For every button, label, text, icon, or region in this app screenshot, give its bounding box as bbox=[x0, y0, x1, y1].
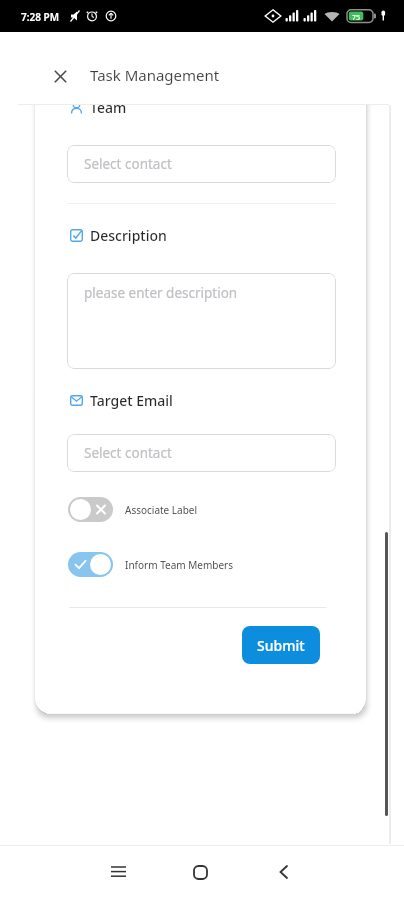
button[interactable]: Inform Team Members bbox=[68, 552, 233, 577]
staticText: Description bbox=[90, 226, 167, 244]
staticText: Team bbox=[90, 98, 127, 116]
button[interactable]: Submit bbox=[242, 626, 320, 664]
button[interactable] bbox=[103, 857, 133, 887]
button[interactable]: Select contact bbox=[67, 434, 336, 472]
button[interactable] bbox=[268, 857, 298, 887]
button[interactable] bbox=[185, 857, 215, 887]
staticText: Associate Label bbox=[125, 503, 198, 517]
staticText: 75 bbox=[352, 13, 361, 23]
button[interactable]: Associate Label bbox=[68, 497, 198, 522]
staticText: Submit bbox=[257, 636, 305, 655]
staticText: Inform Team Members bbox=[125, 558, 233, 572]
button[interactable]: please enter description bbox=[67, 273, 336, 369]
staticText: please enter description bbox=[84, 284, 238, 302]
button[interactable] bbox=[46, 62, 74, 90]
staticText: Select contact bbox=[84, 155, 172, 173]
button[interactable]: Select contact bbox=[67, 145, 336, 183]
staticText: Select contact bbox=[84, 444, 172, 462]
staticText: 7:28 PM bbox=[21, 10, 59, 24]
staticText: Target Email bbox=[90, 391, 173, 409]
staticText: Task Management bbox=[90, 65, 220, 85]
